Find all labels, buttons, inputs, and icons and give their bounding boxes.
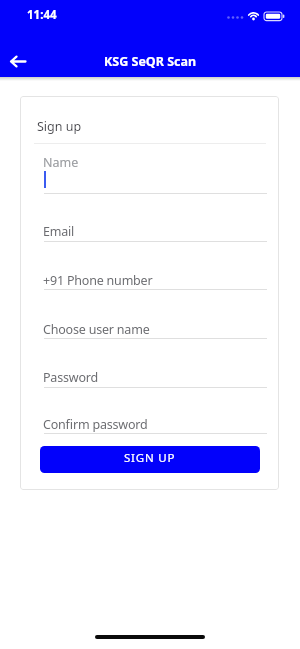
staticText: Confirm password (43, 416, 148, 433)
staticText: SIGN UP (124, 450, 176, 466)
staticText: Password (43, 369, 98, 386)
staticText: Name (43, 154, 79, 171)
button[interactable]: SIGN UP (40, 446, 260, 473)
staticText: Sign up (37, 118, 82, 135)
staticText: +91 Phone number (43, 272, 153, 289)
staticText: Email (43, 223, 75, 240)
button[interactable] (43, 403, 267, 435)
button[interactable] (43, 308, 267, 340)
button[interactable] (43, 152, 267, 193)
staticText: KSG SeQR Scan (104, 53, 197, 70)
button[interactable] (43, 259, 267, 291)
button[interactable] (43, 357, 267, 389)
staticText: 11:44 (27, 7, 57, 23)
staticText: Choose user name (43, 321, 150, 338)
button[interactable] (4, 48, 36, 76)
button[interactable] (43, 211, 267, 243)
